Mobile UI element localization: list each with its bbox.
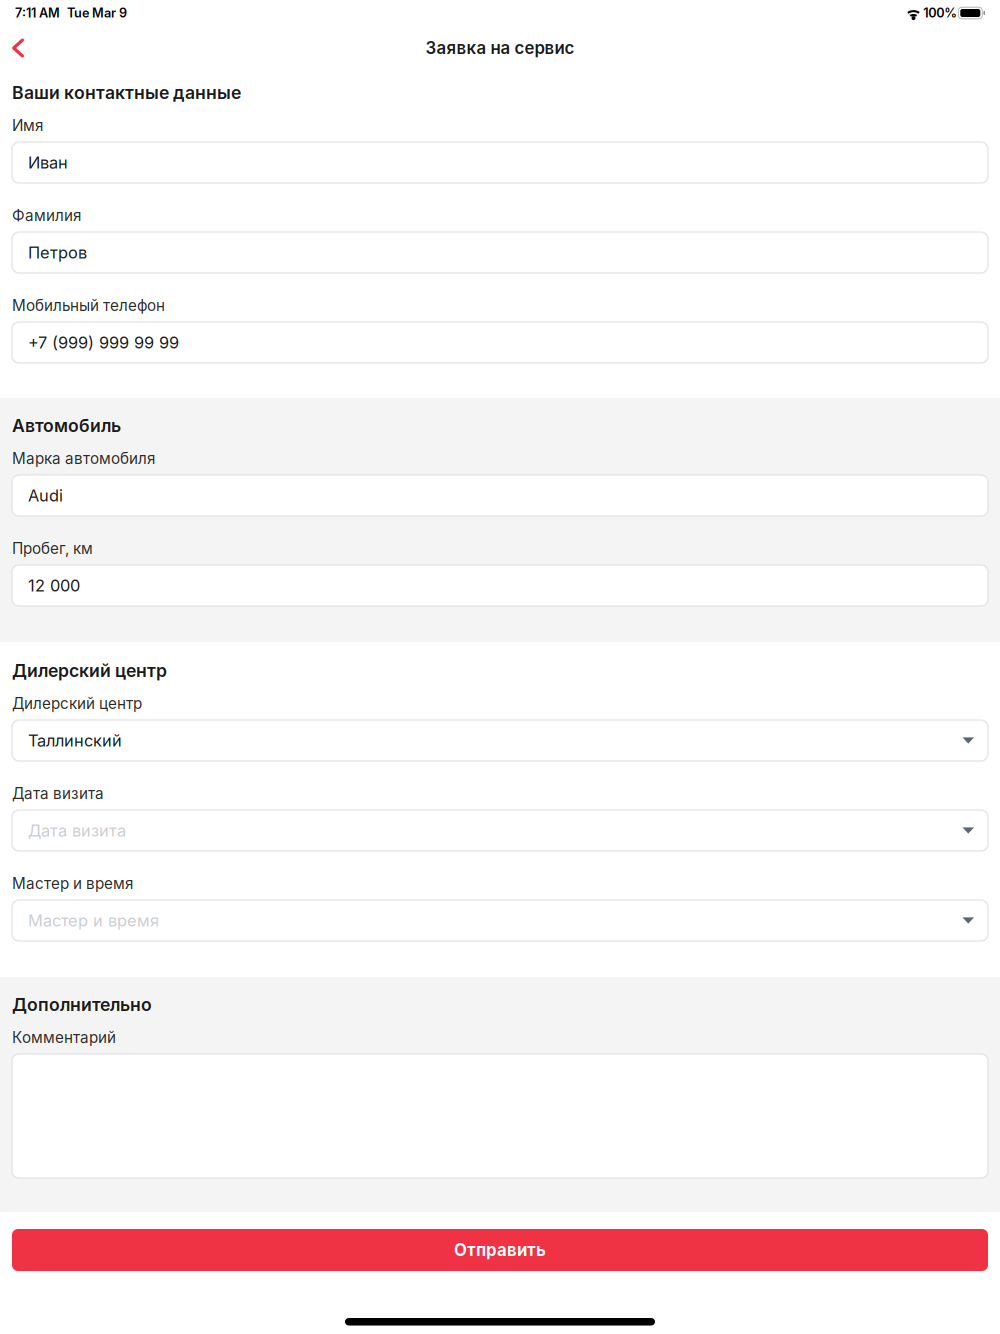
staticText: Дата визита: [12, 784, 104, 803]
button[interactable]: +7 (999) 999 99 99: [0, 322, 1000, 363]
staticText: Мастер и время: [28, 911, 159, 930]
staticText: 7:11 AM: [15, 5, 60, 21]
button[interactable]: 12 000: [0, 565, 1000, 606]
button[interactable]: Иван: [0, 142, 1000, 183]
staticText: 100%: [923, 5, 957, 21]
button[interactable]: Audi: [0, 475, 1000, 516]
staticText: Комментарий: [12, 1028, 116, 1047]
staticText: Фамилия: [12, 206, 81, 225]
staticText: Ваши контактные данные: [12, 82, 241, 103]
button[interactable]: Отправить: [0, 1229, 1000, 1271]
staticText: Дата визита: [28, 821, 126, 840]
staticText: Имя: [12, 116, 43, 135]
staticText: Дилерский центр: [12, 694, 142, 713]
staticText: Автомобиль: [12, 415, 121, 436]
staticText: Петров: [28, 243, 87, 262]
staticText: Дилерский центр: [12, 660, 167, 681]
staticText: Заявка на сервис: [425, 38, 574, 58]
staticText: Пробег, км: [12, 539, 93, 558]
button[interactable]: Комментарий: [0, 1054, 1000, 1178]
staticText: Tue Mar 9: [67, 5, 127, 21]
staticText: Дополнительно: [12, 994, 152, 1015]
staticText: Мастер и время: [12, 874, 133, 893]
staticText: 12 000: [28, 576, 80, 595]
staticText: Иван: [28, 153, 68, 172]
button[interactable]: Дата визита: [0, 810, 1000, 851]
staticText: +7 (999) 999 99 99: [28, 333, 179, 352]
staticText: Таллинский: [28, 731, 122, 750]
staticText: Мобильный телефон: [12, 296, 165, 315]
button[interactable]: Мастер и время: [0, 900, 1000, 941]
button[interactable]: Таллинский: [0, 720, 1000, 761]
staticText: Марка автомобиля: [12, 449, 155, 468]
button[interactable]: Петров: [0, 232, 1000, 273]
staticText: Audi: [28, 486, 63, 505]
staticText: Отправить: [454, 1240, 546, 1260]
button[interactable]: Назад: [0, 28, 44, 68]
